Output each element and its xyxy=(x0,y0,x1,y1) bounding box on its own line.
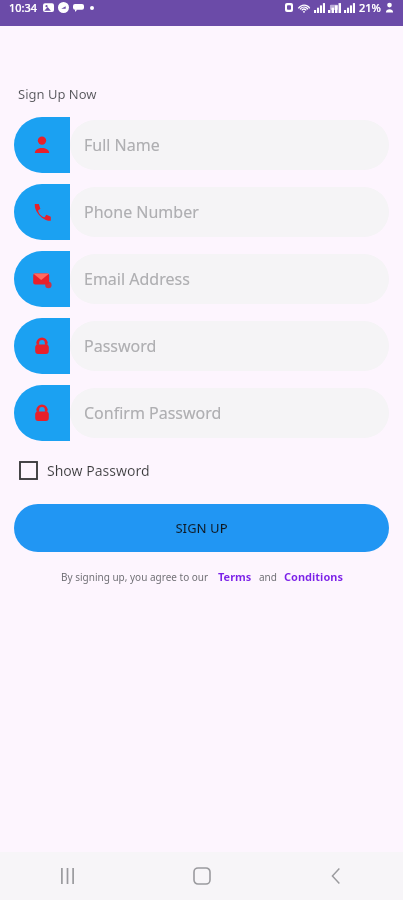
button[interactable]: Full Name xyxy=(14,117,389,173)
staticText: Sign Up Now xyxy=(18,85,97,103)
button[interactable]: Home xyxy=(135,852,269,900)
staticText: and xyxy=(259,570,277,584)
button[interactable]: Phone Number xyxy=(14,184,389,240)
button[interactable]: Back xyxy=(269,852,403,900)
staticText: Full Name xyxy=(84,134,160,156)
staticText: Email Address xyxy=(84,268,190,290)
button[interactable]: Email Address xyxy=(14,251,389,307)
button[interactable]: Confirm Password xyxy=(14,385,389,441)
staticText: 21% xyxy=(359,0,381,15)
button[interactable]: Recent apps xyxy=(0,852,135,900)
staticText: SIGN UP xyxy=(175,519,228,537)
button[interactable]: Conditions xyxy=(284,569,343,584)
button[interactable]: SIGN UP xyxy=(14,504,389,552)
staticText: Conditions xyxy=(284,569,343,584)
staticText: Password xyxy=(84,335,157,357)
staticText: By signing up, you agree to our xyxy=(61,570,209,584)
staticText: Phone Number xyxy=(84,201,199,223)
staticText: Terms xyxy=(218,569,252,584)
button[interactable]: Password xyxy=(14,318,389,374)
button[interactable]: Show Password xyxy=(18,457,152,484)
staticText: 10:34 xyxy=(9,0,38,15)
staticText: Confirm Password xyxy=(84,402,222,424)
staticText: Show Password xyxy=(47,461,150,480)
button[interactable]: Terms xyxy=(218,569,252,584)
